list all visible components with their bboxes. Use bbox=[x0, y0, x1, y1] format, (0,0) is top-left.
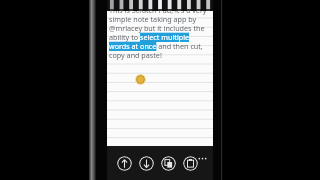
staticText: This is Scratch Pad, it's a very simple … bbox=[109, 5, 211, 60]
button[interactable]: Paste bbox=[183, 156, 198, 171]
button[interactable]: Save bbox=[139, 156, 154, 171]
button[interactable]: Copy bbox=[161, 156, 176, 171]
button[interactable]: Selection handle bbox=[135, 74, 146, 85]
button[interactable]: Share bbox=[117, 156, 132, 171]
button[interactable]: This is Scratch Pad, it's a very simple … bbox=[109, 5, 211, 146]
button[interactable]: More options bbox=[198, 153, 207, 173]
